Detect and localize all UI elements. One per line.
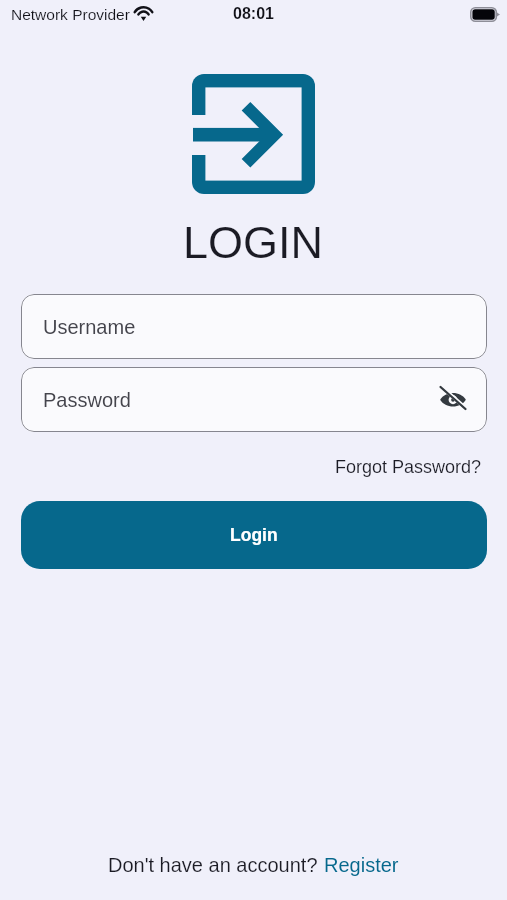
button[interactable]: Register xyxy=(324,854,399,876)
staticText: Username xyxy=(43,316,136,338)
button[interactable]: Password xyxy=(21,367,487,432)
staticText: 08:01 xyxy=(233,5,274,23)
staticText: Login xyxy=(230,525,278,545)
staticText: Register xyxy=(324,854,399,876)
button[interactable]: Forgot Password? xyxy=(310,453,507,481)
staticText: Password xyxy=(43,389,131,411)
staticText: LOGIN xyxy=(183,217,324,267)
staticText: Network Provider xyxy=(11,6,130,23)
staticText: Forgot Password? xyxy=(335,457,482,477)
staticText: Don't have an account? xyxy=(108,854,324,876)
button[interactable]: Show password xyxy=(433,380,473,420)
button[interactable]: Username xyxy=(21,294,487,359)
button[interactable]: Login xyxy=(21,501,487,569)
